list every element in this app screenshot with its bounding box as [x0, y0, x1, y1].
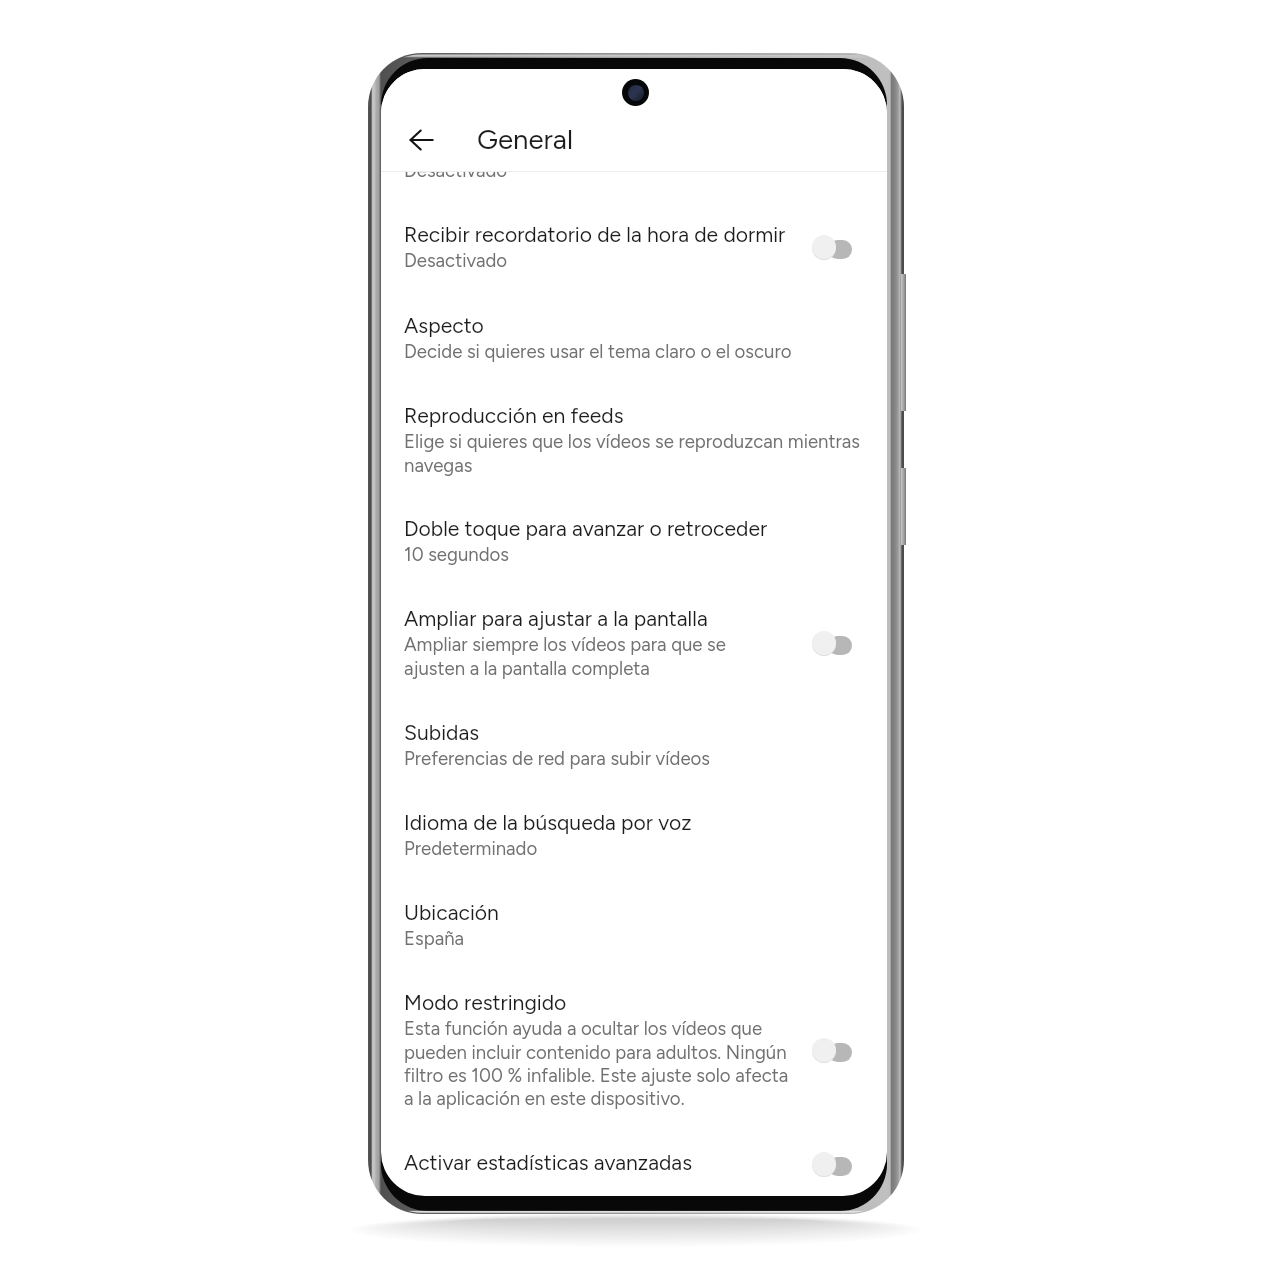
staticText: Activar estadísticas avanzadas [404, 1152, 692, 1175]
staticText: ajusten a la pantalla completa [404, 657, 650, 680]
staticText: navegas [404, 454, 473, 477]
staticText: Desactivado [404, 159, 508, 182]
staticText: Elige si quieres que los vídeos se repro… [404, 430, 860, 453]
staticText: Modo restringido [404, 992, 567, 1015]
button[interactable]: Recibir recordatorio de la hora de dormi… [381, 224, 887, 291]
staticText: Desactivado [404, 249, 508, 272]
staticText: Recibir recordatorio de la hora de dormi… [404, 224, 786, 247]
staticText: Preferencias de red para subir vídeos [404, 747, 711, 770]
button[interactable]: Ubicación [381, 902, 887, 969]
button[interactable]: Reproducción en feeds [381, 405, 887, 495]
staticText: Reproducción en feeds [404, 405, 624, 428]
staticText: 10 segundos [404, 543, 510, 566]
button[interactable]: Modo restringido, desactivado [812, 1033, 858, 1067]
button[interactable]: Idioma de la búsqueda por voz [381, 812, 887, 879]
button[interactable]: Aspecto [381, 315, 887, 382]
button[interactable]: Back [398, 116, 446, 164]
staticText: Esta función ayuda a ocultar los vídeos … [404, 1017, 763, 1040]
staticText: Idioma de la búsqueda por voz [404, 812, 692, 835]
staticText: Aspecto [404, 315, 484, 338]
staticText: Ampliar para ajustar a la pantalla [404, 608, 708, 631]
staticText: España [404, 927, 465, 950]
button[interactable]: Ampliar para ajustar a la pantalla [381, 608, 887, 698]
staticText: General [477, 124, 573, 156]
staticText: Predeterminado [404, 837, 538, 860]
staticText: Ampliar siempre los vídeos para que se [404, 633, 726, 656]
button[interactable]: Recibir recordatorio de la hora de dormi… [812, 230, 858, 264]
button[interactable]: Ampliar para ajustar a la pantalla, desa… [812, 626, 858, 660]
staticText: Doble toque para avanzar o retroceder [404, 518, 768, 541]
button[interactable]: Doble toque para avanzar o retroceder [381, 518, 887, 585]
button[interactable]: Subidas [381, 722, 887, 789]
staticText: Ubicación [404, 902, 499, 925]
button[interactable]: Modo restringido [381, 992, 887, 1129]
staticText: Subidas [404, 722, 480, 745]
button[interactable]: Activar estadísticas avanzadas [381, 1152, 887, 1196]
staticText: pueden incluir contenido para adultos. N… [404, 1041, 787, 1064]
staticText: a la aplicación en este dispositivo. [404, 1087, 685, 1110]
button[interactable]: Activar estadísticas avanzadas, desactiv… [812, 1147, 858, 1181]
staticText: Decide si quieres usar el tema claro o e… [404, 340, 792, 363]
staticText: filtro es 100 % infalible. Este ajuste s… [404, 1064, 789, 1087]
